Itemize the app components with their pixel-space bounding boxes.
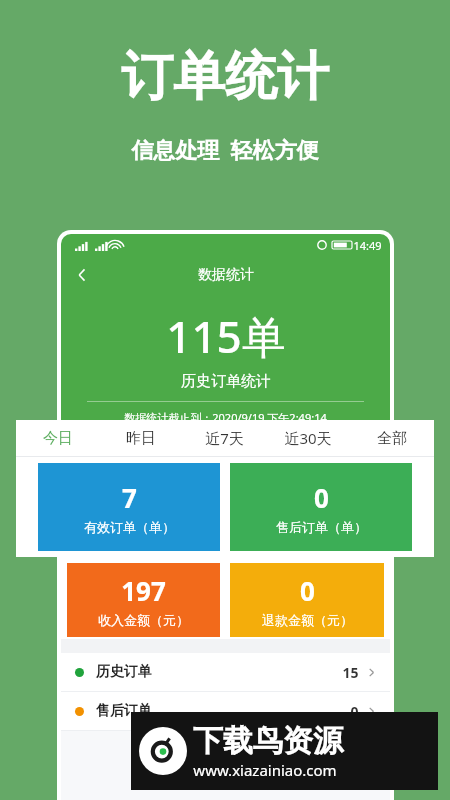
button[interactable]: 近30天 [266,420,350,456]
staticText: 收入金额（元） [98,612,189,628]
staticText: 数据统计截止到：2020/9/19 下午2:49:14 [124,410,327,424]
staticText: 订单统计 [121,44,329,110]
staticText: 下载鸟资源 [193,722,343,760]
staticText: 0 [300,573,315,608]
staticText: 数据统计 [198,266,254,284]
staticText: 0 [314,480,329,515]
staticText: 退款金额（元） [262,612,353,628]
button[interactable]: 197 [67,563,220,637]
button[interactable]: 全部 [350,420,434,456]
button[interactable]: 近7天 [182,420,266,456]
button[interactable]: 今日 [16,420,99,456]
button[interactable]: 0 [230,563,384,637]
staticText: 售后订单（单） [276,519,367,535]
staticText: 7 [122,480,137,515]
staticText: 售后订单 [96,702,152,720]
staticText: 近7天 [205,428,244,448]
staticText: 115单 [166,306,286,366]
staticText: 有效订单（单） [84,519,175,535]
staticText: 197 [121,573,166,608]
staticText: www.xiazainiao.com [193,760,337,780]
staticText: 近30天 [284,428,332,448]
button[interactable]: 售后订单 [61,692,390,730]
staticText: 14:49 [353,238,382,253]
staticText: 历史订单统计 [181,372,271,391]
button[interactable]: 0 [230,463,412,551]
staticText: 全部 [377,429,407,448]
staticText: 15 [342,663,359,682]
staticText: 今日 [43,429,73,448]
staticText: 历史订单 [96,663,152,681]
button[interactable]: 7 [38,463,220,551]
staticText: 0 [350,702,359,721]
button[interactable]: Back [69,262,95,288]
staticText: 信息处理 轻松方便 [131,134,319,164]
button[interactable]: 昨日 [99,420,182,456]
staticText: 昨日 [126,429,156,448]
button[interactable]: 历史订单 [61,653,390,691]
